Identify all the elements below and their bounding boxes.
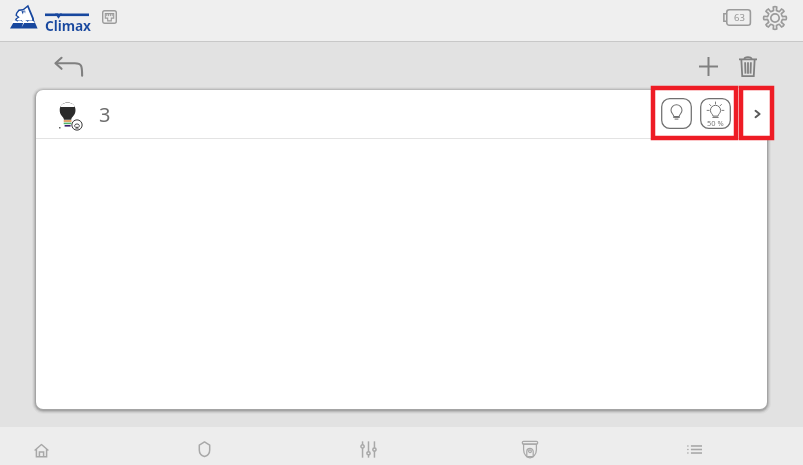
staticText: 3	[99, 101, 111, 128]
button[interactable]: Events	[664, 427, 724, 465]
button[interactable]: 3	[36, 90, 767, 138]
button[interactable]: Details	[746, 90, 768, 138]
staticText: Climax	[45, 16, 91, 35]
button[interactable]: Toggle light	[661, 98, 692, 129]
staticText: 50 %	[707, 118, 724, 128]
staticText: 63	[734, 11, 745, 24]
button[interactable]: Network	[102, 10, 117, 24]
button[interactable]: Battery 63 percent	[723, 9, 752, 26]
button[interactable]: Settings	[762, 5, 788, 31]
button[interactable]: Back	[48, 51, 88, 81]
button[interactable]: Security	[175, 427, 235, 465]
button[interactable]: Brightness 50 percent	[700, 98, 731, 129]
button[interactable]: Home	[12, 427, 72, 465]
button[interactable]: Climax	[4, 2, 94, 34]
button[interactable]: Add	[690, 50, 726, 82]
button[interactable]: Cameras	[500, 427, 560, 465]
button[interactable]: Delete	[730, 50, 766, 82]
button[interactable]: Controls	[338, 427, 398, 465]
